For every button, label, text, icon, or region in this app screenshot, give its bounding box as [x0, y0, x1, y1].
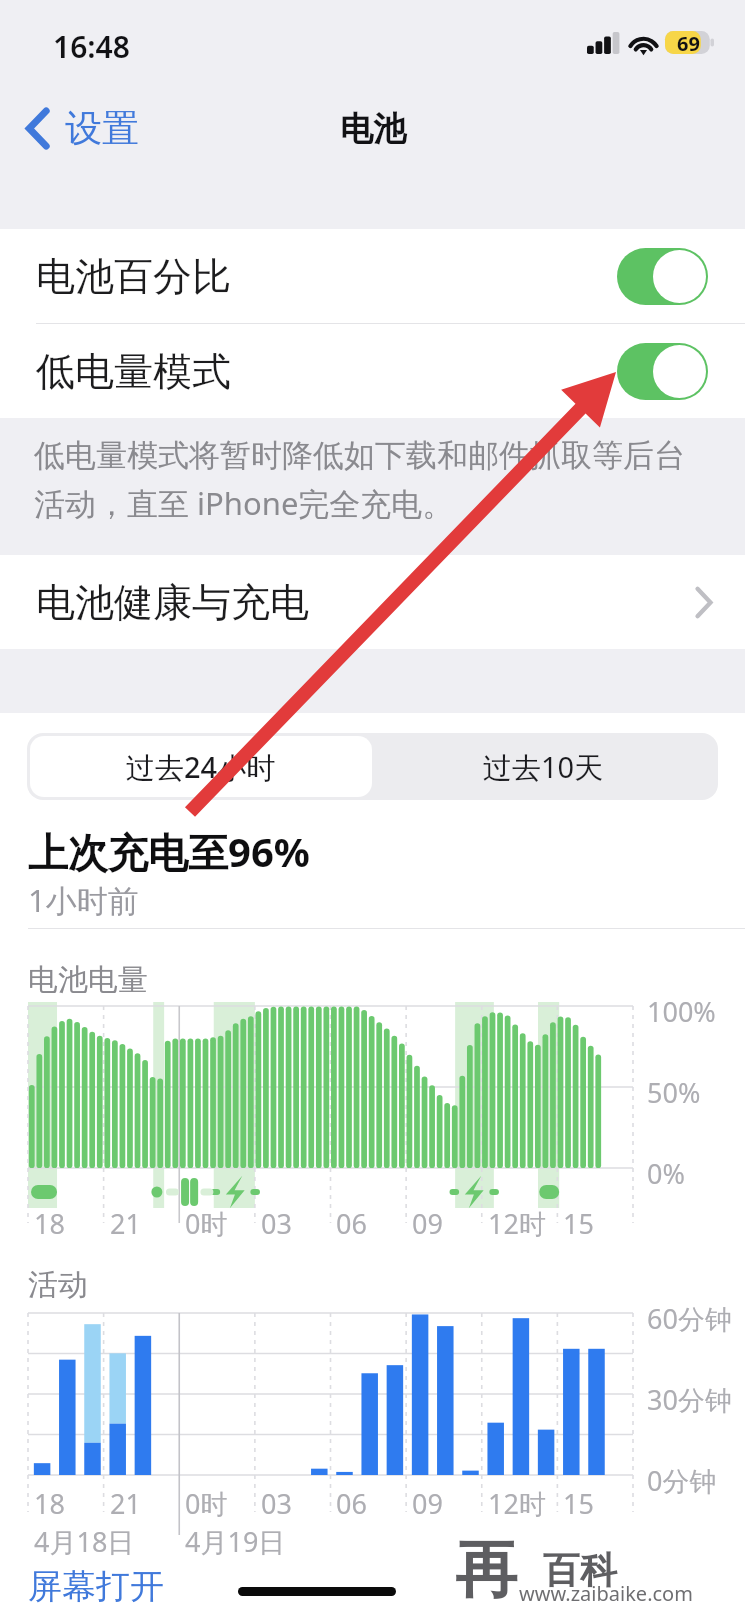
staticText: 活动	[28, 1266, 88, 1304]
staticText: 09	[412, 1205, 443, 1242]
staticText: 屏幕打开	[28, 1565, 164, 1608]
staticText: 18	[34, 1485, 65, 1522]
staticText: 03	[261, 1485, 292, 1522]
staticText: 0时	[185, 1485, 228, 1522]
button[interactable]: Toggle	[617, 343, 708, 400]
staticText: 18	[34, 1205, 65, 1242]
button[interactable]: 电池健康与充电	[0, 555, 745, 649]
button[interactable]: 过去24小时	[30, 736, 372, 797]
staticText: 09	[412, 1485, 443, 1522]
staticText: 0%	[647, 1155, 685, 1192]
staticText: 21	[110, 1485, 141, 1522]
staticText: 16:48	[53, 26, 130, 67]
staticText: 06	[336, 1485, 367, 1522]
staticText: 过去24小时	[126, 747, 276, 787]
staticText: 百科	[543, 1547, 617, 1594]
button[interactable]: 低电量模式	[0, 324, 745, 418]
staticText: 60分钟	[647, 1300, 732, 1337]
staticText: 过去10天	[483, 747, 604, 787]
staticText: 15	[563, 1205, 594, 1242]
staticText: 0时	[185, 1205, 228, 1242]
button[interactable]: 过去10天	[372, 736, 715, 797]
staticText: 电池健康与充电	[36, 578, 309, 627]
staticText: 电池百分比	[36, 252, 231, 301]
staticText: 69	[677, 30, 700, 53]
staticText: 21	[110, 1205, 141, 1242]
button[interactable]: Toggle	[617, 248, 708, 305]
staticText: 06	[336, 1205, 367, 1242]
staticText: 100%	[647, 993, 716, 1030]
staticText: 低电量模式将暂时降低如下载和邮件抓取等后台 活动，直至 iPhone完全充电。	[34, 436, 685, 524]
staticText: 50%	[647, 1074, 701, 1111]
staticText: 0分钟	[647, 1462, 717, 1499]
staticText: 30分钟	[647, 1381, 732, 1418]
staticText: 03	[261, 1205, 292, 1242]
button[interactable]: 电池百分比	[0, 229, 745, 323]
button[interactable]: Back to Settings	[0, 99, 151, 158]
staticText: 12时	[488, 1485, 546, 1522]
staticText: 1小时前	[28, 879, 139, 921]
staticText: www.zaibaike.com	[519, 1580, 693, 1607]
staticText: 低电量模式	[36, 347, 231, 396]
staticText: 15	[563, 1485, 594, 1522]
staticText: 设置	[65, 105, 139, 152]
staticText: 4月18日	[34, 1523, 135, 1560]
staticText: 12时	[488, 1205, 546, 1242]
staticText: 电池	[340, 108, 406, 150]
staticText: 再	[455, 1531, 517, 1609]
staticText: 4月19日	[185, 1523, 286, 1560]
staticText: 上次充电至96%	[28, 824, 310, 879]
staticText: 电池电量	[28, 961, 148, 999]
